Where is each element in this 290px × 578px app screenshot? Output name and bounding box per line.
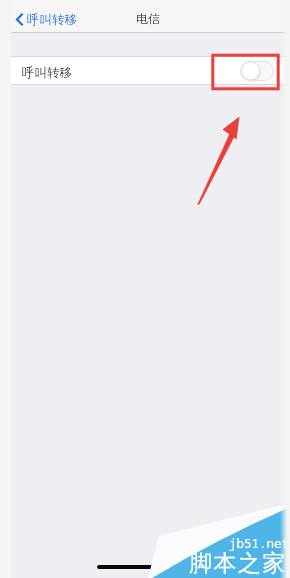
staticText: 呼叫转移 <box>22 65 72 81</box>
staticText: jb51.net <box>229 535 290 552</box>
button[interactable]: Call forwarding toggle <box>240 61 274 81</box>
staticText: 电信 <box>136 11 160 26</box>
staticText: 脚本之家 <box>189 549 287 578</box>
button[interactable]: 呼叫转移 <box>0 3 85 36</box>
button[interactable]: 呼叫转移 <box>0 57 290 84</box>
staticText: 呼叫转移 <box>27 12 77 28</box>
